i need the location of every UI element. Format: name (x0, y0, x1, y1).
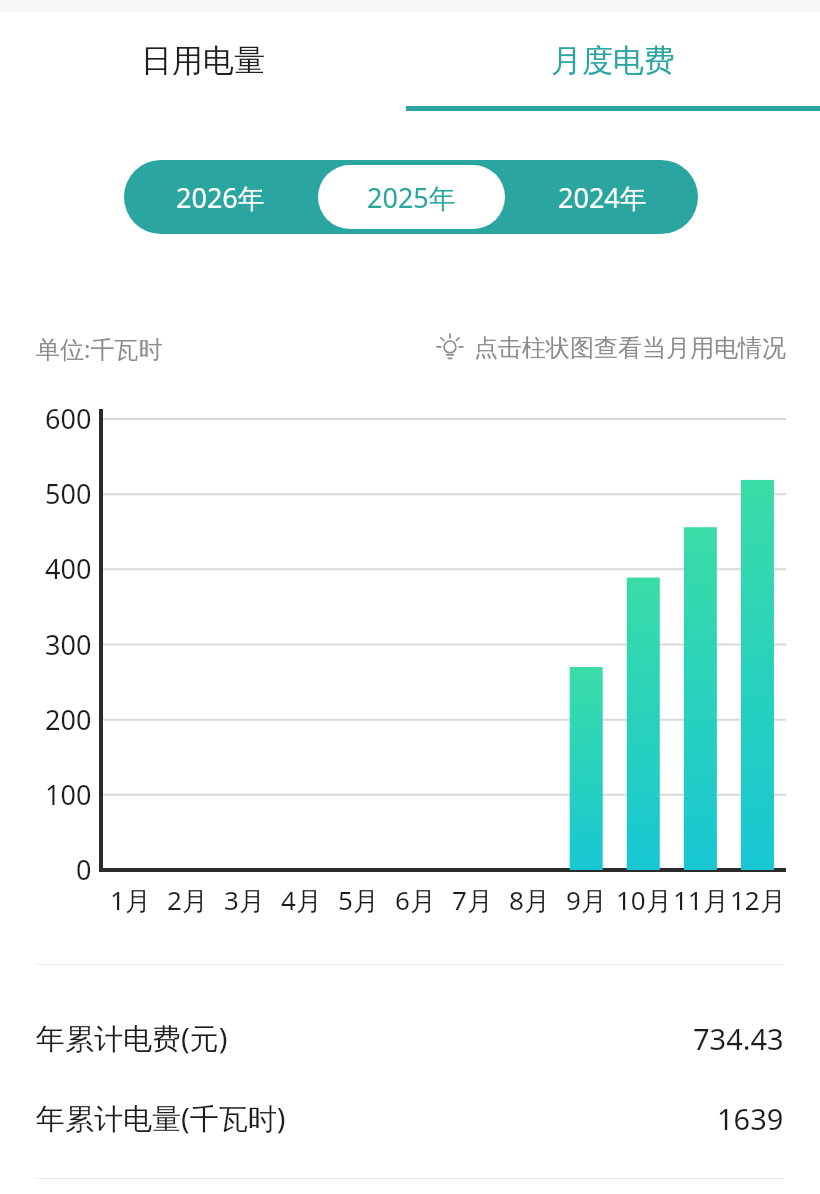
staticText: 600 (45, 400, 92, 437)
staticText: 4月 (281, 882, 322, 918)
staticText: 1月 (110, 882, 151, 918)
staticText: 2024年 (558, 179, 647, 216)
staticText: 8月 (509, 882, 550, 918)
staticText: 5月 (338, 882, 379, 918)
staticText: 年累计电费(元) (36, 1018, 228, 1058)
staticText: 300 (45, 626, 92, 663)
staticText: 日用电量 (141, 41, 265, 80)
staticText: 3月 (224, 882, 265, 918)
staticText: 2月 (167, 882, 208, 918)
staticText: 7月 (452, 882, 493, 918)
button[interactable]: 月度电费 (406, 12, 820, 108)
staticText: 11月 (673, 882, 729, 918)
staticText: 0 (76, 851, 92, 888)
staticText: 2026年 (176, 179, 265, 216)
staticText: 单位:千瓦时 (36, 332, 163, 365)
button[interactable]: 年累计电量(千瓦时) (0, 1080, 820, 1156)
other: 提示 (434, 332, 466, 364)
staticText: 1639 (717, 1099, 784, 1138)
staticText: 100 (45, 776, 92, 813)
staticText: 9月 (566, 882, 607, 918)
staticText: 734.43 (693, 1019, 784, 1058)
staticText: 月度电费 (551, 41, 675, 80)
button[interactable]: 2024年 (509, 165, 696, 229)
button[interactable]: 日用电量 (0, 12, 406, 108)
staticText: 2025年 (367, 179, 456, 216)
staticText: 12月 (730, 882, 786, 918)
button[interactable]: 2026年 (126, 165, 314, 229)
staticText: 点击柱状图查看当月用电情况 (474, 333, 786, 363)
staticText: 200 (45, 701, 92, 738)
staticText: 10月 (616, 882, 672, 918)
button[interactable]: 年累计电费(元) (0, 1000, 820, 1076)
staticText: 年累计电量(千瓦时) (36, 1098, 286, 1138)
staticText: 500 (45, 475, 92, 512)
staticText: 6月 (395, 882, 436, 918)
button[interactable]: 2025年 (318, 165, 505, 229)
staticText: 400 (45, 550, 92, 587)
